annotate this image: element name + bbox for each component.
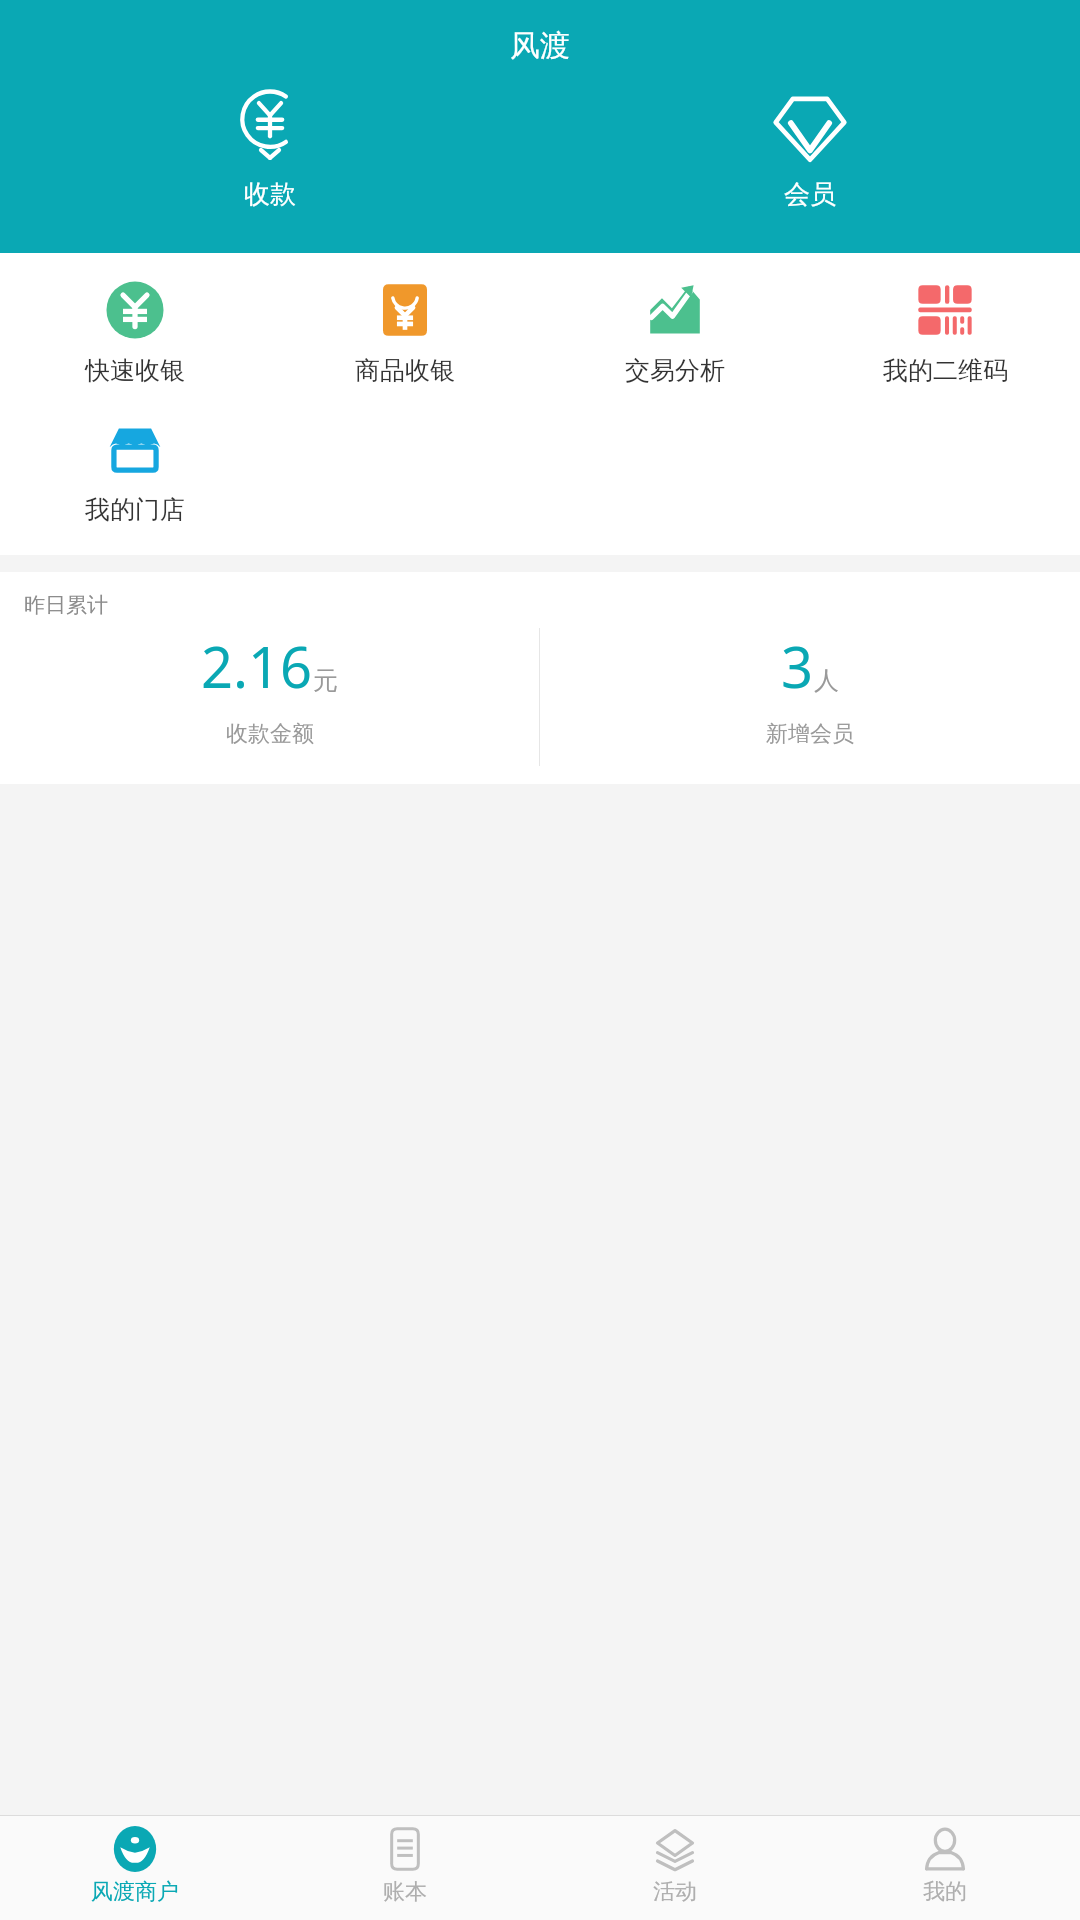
button[interactable]: 活动 [540,1816,810,1920]
staticText: 昨日累计 [24,592,108,618]
button[interactable]: 商品收银 [270,271,540,394]
staticText: 会员 [784,178,836,211]
staticText: 风渡商户 [91,1878,179,1906]
staticText: 人 [814,665,839,696]
other: 风渡商户 [112,1826,158,1872]
staticText: 元 [313,665,338,696]
button[interactable]: 快速收银 [0,271,270,394]
staticText: 商品收银 [355,355,455,386]
staticText: 活动 [653,1878,697,1906]
staticText: 我的二维码 [883,355,1008,386]
button[interactable]: 3 [540,628,1080,766]
staticText: 账本 [383,1878,427,1906]
button[interactable]: 交易分析 [540,271,810,394]
other: 账本 [382,1826,428,1872]
staticText: 3 [781,628,814,704]
staticText: 风渡 [510,27,570,65]
staticText: 2.16 [201,628,313,704]
button[interactable]: 2.16 [0,628,539,766]
other: 我的 [922,1826,968,1872]
button[interactable]: 收款 [0,88,540,211]
staticText: 收款 [244,178,296,211]
staticText: 我的 [923,1878,967,1906]
button[interactable]: 我的二维码 [810,271,1080,394]
other: 活动 [652,1826,698,1872]
staticText: 交易分析 [625,355,725,386]
button[interactable]: 风渡商户 [0,1816,270,1920]
button[interactable]: 我的 [810,1816,1080,1920]
button[interactable]: 会员 [540,88,1080,211]
button[interactable]: 我的门店 [0,410,270,533]
staticText: 我的门店 [85,494,185,525]
button[interactable]: 账本 [270,1816,540,1920]
staticText: 新增会员 [766,720,854,748]
staticText: 快速收银 [85,355,185,386]
staticText: 收款金额 [226,720,314,748]
